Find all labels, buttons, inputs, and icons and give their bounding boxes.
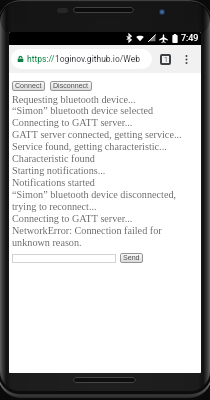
button[interactable]: Tabs, 1 open bbox=[156, 50, 174, 68]
staticText: 7:49 bbox=[181, 33, 199, 44]
staticText: 1 bbox=[164, 56, 168, 64]
button[interactable]: More options bbox=[180, 50, 192, 68]
staticText: Disconnect bbox=[53, 82, 89, 90]
staticText: Requesting bluetooth device... “Simon” b… bbox=[12, 94, 182, 248]
staticText: 1oginov.github.io/Web bbox=[55, 54, 140, 64]
staticText: https:// bbox=[27, 54, 55, 64]
button[interactable]: Connect bbox=[12, 81, 45, 91]
button[interactable]: Disconnect bbox=[50, 81, 92, 91]
staticText: Send bbox=[123, 254, 140, 262]
staticText: Connect bbox=[15, 82, 42, 90]
button[interactable] bbox=[12, 254, 116, 263]
button[interactable]: Send bbox=[120, 253, 143, 263]
button[interactable]: https:// bbox=[11, 49, 152, 69]
